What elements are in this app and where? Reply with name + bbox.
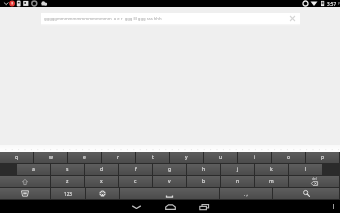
button[interactable]: y (170, 152, 203, 163)
button[interactable]: s (51, 164, 84, 175)
button[interactable]: u (204, 152, 237, 163)
button[interactable]: l (289, 164, 322, 175)
staticText: u (219, 154, 223, 161)
staticText: h (202, 166, 206, 173)
staticText: l (305, 166, 307, 173)
button[interactable]: t (136, 152, 169, 163)
staticText: m (269, 178, 274, 185)
button[interactable]: g (153, 164, 186, 175)
staticText: q (15, 154, 19, 161)
button[interactable]: Change keyboard (0, 188, 50, 199)
staticText: x (100, 178, 103, 185)
staticText: b (202, 178, 206, 185)
staticText: . , (244, 191, 248, 197)
staticText: g (168, 166, 172, 173)
button[interactable]: gggggmmmmmmmmmmmmmm a e r ggg lll ggg ss… (41, 13, 300, 24)
button[interactable]: 123 (51, 188, 85, 199)
staticText: j (237, 166, 239, 173)
button[interactable]: Search (273, 188, 339, 199)
button[interactable]: Hide keyboard (119, 200, 153, 213)
button[interactable]: Clear search (287, 13, 298, 24)
staticText: v (168, 178, 171, 185)
staticText: y (185, 154, 188, 161)
button[interactable]: k (255, 164, 288, 175)
staticText: a (32, 166, 35, 173)
staticText: t (152, 154, 154, 161)
button[interactable]: w (34, 152, 67, 163)
button[interactable]: x (85, 176, 118, 187)
button[interactable]: a (17, 164, 50, 175)
button[interactable]: Recent apps (187, 200, 221, 213)
button[interactable]: p (306, 152, 339, 163)
button[interactable]: v (153, 176, 186, 187)
staticText: o (287, 154, 291, 161)
staticText: i (254, 154, 256, 161)
button[interactable]: Change language (86, 188, 119, 199)
staticText: k (270, 166, 273, 173)
staticText: PM (338, 2, 340, 6)
staticText: p (321, 154, 325, 161)
button[interactable]: . , (220, 188, 272, 199)
button[interactable]: i (238, 152, 271, 163)
staticText: d (100, 166, 104, 173)
button[interactable]: b (187, 176, 220, 187)
staticText: r (117, 154, 120, 161)
staticText: n (236, 178, 240, 185)
button[interactable]: d (85, 164, 118, 175)
button[interactable]: n (221, 176, 254, 187)
staticText: gggggmmmmmmmmmmmmmm a e r ggg lll ggg ss… (44, 16, 162, 22)
button[interactable]: c (119, 176, 152, 187)
button[interactable]: z (51, 176, 84, 187)
staticText: f (135, 166, 137, 173)
button[interactable]: j (221, 164, 254, 175)
button[interactable]: q (0, 152, 33, 163)
button[interactable]: f (119, 164, 152, 175)
staticText: w (49, 154, 53, 161)
button[interactable]: r (102, 152, 135, 163)
staticText: 3:57 (327, 1, 337, 7)
staticText: c (134, 178, 137, 185)
button[interactable]: Shift (0, 176, 50, 187)
staticText: del (312, 177, 317, 181)
button[interactable]: Space (120, 188, 219, 199)
staticText: e (83, 154, 86, 161)
button[interactable]: e (68, 152, 101, 163)
button[interactable]: h (187, 164, 220, 175)
button[interactable]: m (255, 176, 288, 187)
staticText: z (66, 178, 69, 185)
button[interactable]: Home (153, 200, 187, 213)
button[interactable]: o (272, 152, 305, 163)
staticText: 123 (64, 191, 72, 197)
button[interactable]: Backspace (289, 176, 339, 187)
staticText: s (66, 166, 69, 173)
